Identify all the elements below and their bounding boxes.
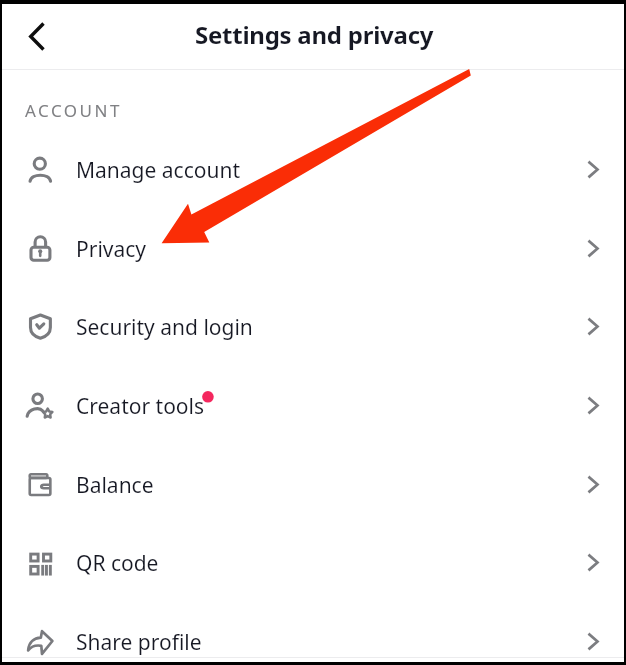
- staticText: QR code: [76, 549, 159, 578]
- staticText: Manage account: [76, 156, 240, 185]
- staticText: Settings and privacy: [195, 18, 434, 51]
- staticText: ACCOUNT: [25, 99, 122, 122]
- button[interactable]: Share profile: [2, 603, 624, 665]
- button[interactable]: Creator tools: [2, 367, 624, 446]
- staticText: Creator tools: [76, 392, 205, 421]
- staticText: Share profile: [76, 628, 202, 657]
- button[interactable]: Balance: [2, 446, 624, 525]
- button[interactable]: QR code: [2, 524, 624, 603]
- staticText: Privacy: [76, 235, 147, 264]
- staticText: Balance: [76, 471, 154, 500]
- button[interactable]: Privacy: [2, 210, 624, 289]
- button[interactable]: Security and login: [2, 288, 624, 367]
- staticText: Security and login: [76, 313, 253, 342]
- button[interactable]: Manage account: [2, 131, 624, 210]
- button[interactable]: Back: [13, 13, 59, 59]
